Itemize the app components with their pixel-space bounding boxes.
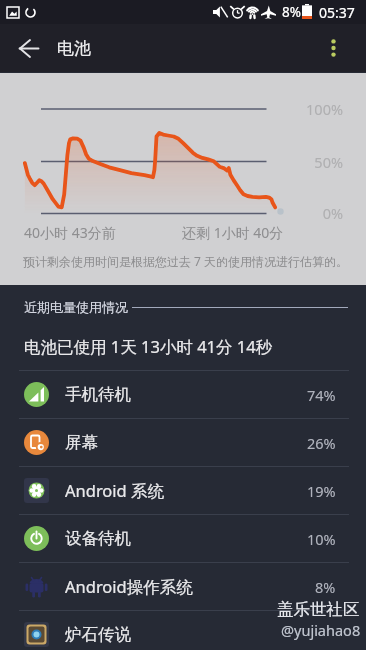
staticText: 8% — [315, 577, 336, 597]
button[interactable]: More options — [313, 28, 353, 68]
staticText: 还剩 1小时 40分 — [182, 223, 284, 242]
staticText: 0% — [322, 203, 343, 223]
button[interactable]: 手机待机 — [0, 371, 366, 418]
button[interactable]: 屏幕 — [0, 419, 366, 466]
staticText: 盖乐世社区 — [277, 599, 360, 620]
staticText: 05:37 — [319, 3, 355, 22]
staticText: 近期电量使用情况 — [24, 299, 128, 315]
staticText: 10% — [307, 529, 336, 549]
button[interactable]: Back — [9, 28, 49, 68]
staticText: 100% — [306, 99, 343, 119]
staticText: 手机待机 — [65, 384, 131, 405]
staticText: Android 系统 — [65, 479, 165, 502]
staticText: 电池 — [57, 38, 91, 59]
staticText: 40小时 43分前 — [24, 223, 116, 242]
staticText: 19% — [307, 481, 336, 501]
button[interactable]: 炉石传说 — [0, 611, 366, 650]
button[interactable]: Android 系统 — [0, 467, 366, 514]
staticText: 电池已使用 1天 13小时 41分 14秒 — [24, 335, 273, 358]
staticText: 预计剩余使用时间是根据您过去 7 天的使用情况进行估算的。 — [23, 253, 349, 269]
staticText: 74% — [307, 385, 336, 405]
staticText: 设备待机 — [65, 528, 131, 549]
button[interactable]: 设备待机 — [0, 515, 366, 562]
staticText: 炉石传说 — [65, 624, 131, 645]
staticText: Android操作系统 — [65, 575, 193, 598]
staticText: 50% — [314, 152, 343, 172]
staticText: 8% — [282, 3, 301, 21]
staticText: @yujiahao8 — [281, 620, 361, 640]
staticText: 屏幕 — [65, 432, 98, 453]
button[interactable]: Android操作系统 — [0, 563, 366, 610]
staticText: 26% — [307, 433, 336, 453]
